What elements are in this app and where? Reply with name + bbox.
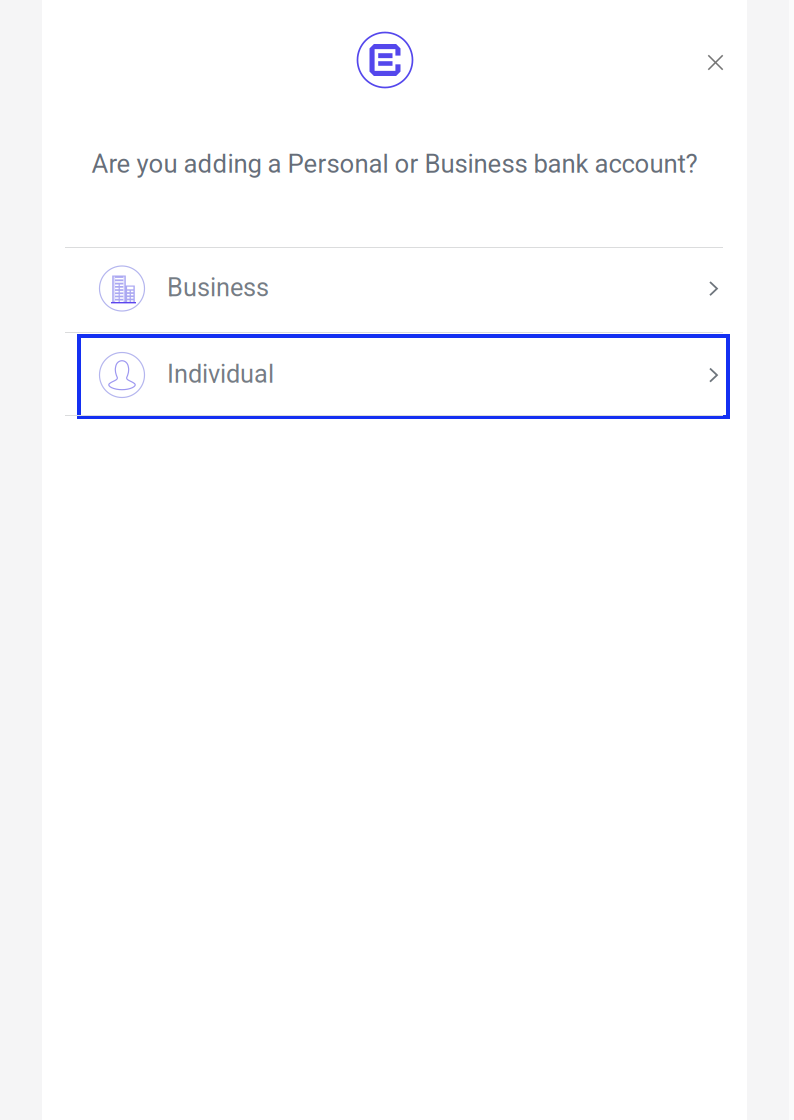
staticText: Individual bbox=[167, 359, 274, 389]
button[interactable]: Close bbox=[693, 40, 737, 84]
staticText: Are you adding a Personal or Business ba… bbox=[91, 149, 697, 179]
button[interactable]: Individual bbox=[42, 333, 747, 415]
button[interactable]: Business bbox=[42, 248, 747, 332]
staticText: Business bbox=[167, 273, 269, 302]
